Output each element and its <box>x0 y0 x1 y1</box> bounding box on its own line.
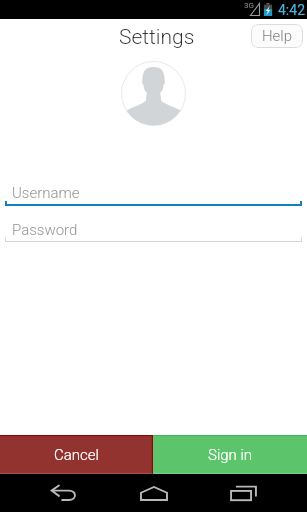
staticText: Sign in <box>208 446 253 464</box>
staticText: Help <box>262 27 293 45</box>
button[interactable]: Help <box>251 24 303 48</box>
staticText: Settings <box>119 25 195 50</box>
button[interactable]: Recent apps <box>205 474 282 512</box>
button[interactable]: Cancel <box>0 435 153 474</box>
staticText: Username <box>12 184 80 202</box>
staticText: Password <box>12 221 78 239</box>
button[interactable]: Back <box>25 474 102 512</box>
staticText: Cancel <box>54 446 99 464</box>
button[interactable]: Home <box>115 474 192 512</box>
staticText: 3G <box>244 1 254 10</box>
staticText: 4:42 <box>278 2 305 18</box>
button[interactable]: Sign in <box>153 435 307 474</box>
